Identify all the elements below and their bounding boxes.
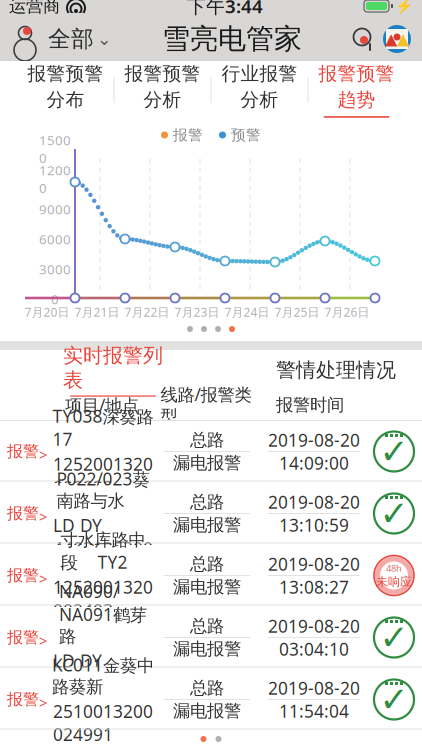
- staticText: 分析: [240, 88, 278, 111]
- staticText: 1252001320002403: [53, 576, 153, 622]
- button[interactable]: 报警: [0, 607, 422, 669]
- staticText: 总路: [190, 677, 224, 699]
- staticText: 7月23日: [174, 304, 219, 320]
- staticText: 48h: [386, 562, 402, 574]
- staticText: 报警预警: [124, 62, 200, 85]
- button[interactable]: 行业报警: [211, 62, 307, 118]
- staticText: 总路: [190, 429, 224, 451]
- staticText: 7月21日: [74, 304, 119, 320]
- staticText: 行业报警: [221, 62, 297, 85]
- staticText: 9000: [39, 200, 71, 218]
- staticText: 漏电报警: [173, 700, 241, 722]
- staticText: KC011金葵中路葵新: [52, 653, 154, 698]
- staticText: 漏电报警: [173, 452, 241, 474]
- staticText: 雪亮电管家: [162, 22, 302, 56]
- staticText: 下午3:44: [187, 0, 263, 18]
- staticText: >: [39, 445, 47, 464]
- button[interactable]: 实时报警列表: [58, 353, 168, 387]
- button[interactable]: 账户: [8, 22, 42, 56]
- staticText: 14:09:00: [279, 451, 349, 474]
- staticText: 报警时间: [276, 394, 344, 416]
- staticText: 7月22日: [124, 304, 169, 320]
- staticText: 0: [51, 290, 59, 308]
- staticText: 7月24日: [224, 304, 269, 320]
- button[interactable]: 报警预警: [308, 62, 404, 118]
- button[interactable]: 报警: [0, 669, 422, 731]
- staticText: 报警预警: [318, 62, 394, 85]
- staticText: 运营商: [9, 0, 60, 17]
- staticText: 2019-08-20: [268, 676, 360, 699]
- staticText: 15000: [39, 131, 71, 167]
- staticText: P022/023葵南路与水: [56, 467, 149, 512]
- staticText: 3000: [39, 260, 71, 278]
- button[interactable]: 报警: [0, 483, 422, 545]
- staticText: 报警: [7, 628, 39, 647]
- staticText: 2019-08-20: [268, 552, 360, 575]
- staticText: NA090/NA091鹤芽路: [59, 580, 147, 647]
- staticText: ✓: [379, 618, 408, 657]
- staticText: 警情处理情况: [276, 358, 396, 382]
- staticText: 6000: [39, 230, 71, 248]
- staticText: ▲: [385, 30, 397, 48]
- staticText: 实时报警列表: [63, 343, 163, 392]
- staticText: 13:10:59: [279, 513, 349, 536]
- button[interactable]: 警情处理情况: [276, 353, 396, 387]
- staticText: 漏电报警: [173, 514, 241, 536]
- button[interactable]: 报警: [0, 545, 422, 607]
- staticText: LD DY 4403125300: [53, 514, 153, 560]
- staticText: 线路/报警类型: [160, 383, 251, 427]
- staticText: 总路: [190, 491, 224, 513]
- staticText: 报警: [7, 566, 39, 585]
- staticText: >: [39, 507, 47, 526]
- staticText: 2019-08-20: [268, 614, 360, 637]
- staticText: 2510013200024991: [53, 700, 153, 746]
- staticText: LD DY 4403125400: [53, 649, 153, 695]
- staticText: 漏电报警: [173, 638, 241, 660]
- staticText: ⚡: [395, 0, 413, 14]
- staticText: 趋势: [337, 88, 375, 111]
- staticText: 未响应: [376, 574, 412, 589]
- staticText: 12000: [39, 161, 71, 197]
- staticText: TY038深葵路17: [52, 404, 153, 450]
- staticText: 全部: [48, 25, 94, 53]
- staticText: 1252001320002222: [53, 452, 153, 498]
- staticText: 7月25日: [274, 304, 319, 320]
- staticText: ✓: [379, 494, 408, 533]
- button[interactable]: 地图: [380, 22, 414, 56]
- staticText: ✓: [379, 680, 408, 719]
- staticText: 03:04:10: [279, 637, 349, 660]
- staticText: 13:08:27: [279, 575, 349, 598]
- staticText: >: [39, 569, 47, 588]
- staticText: 分析: [143, 88, 181, 111]
- staticText: ▲: [397, 30, 409, 48]
- staticText: 报警: [7, 690, 39, 709]
- staticText: 报警: [7, 504, 39, 523]
- button[interactable]: 报警预警: [17, 62, 113, 118]
- staticText: 报警: [7, 442, 39, 461]
- staticText: 11:54:04: [279, 699, 349, 722]
- staticText: 寸水库路中段 TY2: [60, 529, 145, 574]
- staticText: 漏电报警: [173, 576, 241, 598]
- staticText: 预警: [231, 126, 261, 144]
- staticText: >: [39, 631, 47, 650]
- button[interactable]: 全部: [42, 22, 118, 56]
- button[interactable]: 报警: [0, 421, 422, 483]
- staticText: >: [39, 693, 47, 712]
- staticText: 项目/地点: [65, 393, 139, 416]
- button[interactable]: 报警预警: [114, 62, 210, 118]
- button[interactable]: 搜索: [346, 22, 380, 56]
- staticText: 总路: [190, 615, 224, 637]
- staticText: 分布: [46, 88, 84, 111]
- staticText: ✓: [379, 432, 408, 471]
- staticText: 7月20日: [24, 304, 69, 320]
- staticText: 总路: [190, 553, 224, 575]
- staticText: 7月26日: [324, 304, 369, 320]
- staticText: ⌄: [97, 29, 112, 49]
- staticText: 报警: [173, 126, 203, 144]
- staticText: 2019-08-20: [268, 490, 360, 513]
- staticText: 报警预警: [27, 62, 103, 85]
- staticText: 2019-08-20: [268, 428, 360, 451]
